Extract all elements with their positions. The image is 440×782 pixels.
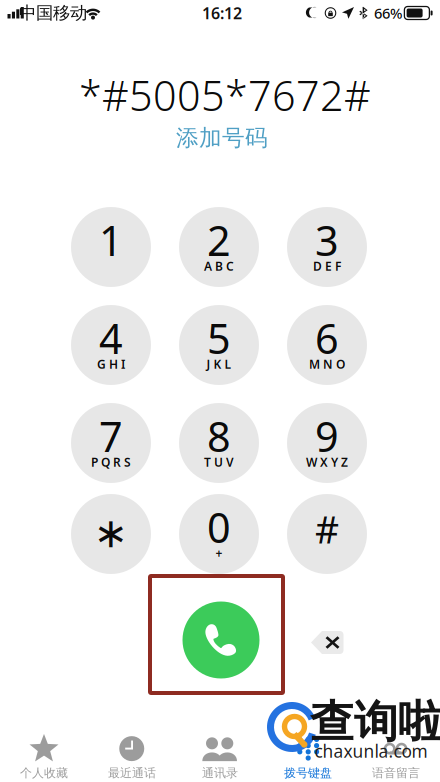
button[interactable]: 语音留言	[352, 732, 440, 782]
button[interactable]: 添加号码	[152, 125, 292, 151]
button[interactable]: ∗	[71, 494, 151, 574]
staticText: chaxunla.com	[314, 739, 427, 762]
button[interactable]: 0	[179, 494, 259, 574]
button[interactable]: 4	[71, 305, 151, 385]
button[interactable]: 通讯录	[176, 732, 264, 782]
button[interactable]: Call	[182, 601, 259, 678]
staticText: G H I	[97, 356, 125, 372]
staticText: 66%	[374, 3, 402, 23]
staticText: 3	[315, 213, 339, 267]
button[interactable]: 拨号键盘	[264, 732, 352, 782]
staticText: A B C	[204, 258, 234, 274]
button[interactable]: 1	[71, 207, 151, 287]
staticText: 添加号码	[176, 124, 268, 152]
button[interactable]: 5	[179, 305, 259, 385]
staticText: 1	[99, 213, 123, 267]
button[interactable]: 9	[287, 403, 367, 483]
staticText: 通讯录	[202, 766, 238, 780]
staticText: +	[215, 545, 222, 561]
staticText: 最近通话	[108, 766, 156, 780]
button[interactable]: #	[287, 494, 367, 574]
staticText: J K L	[206, 356, 231, 372]
staticText: 0	[207, 500, 231, 554]
button[interactable]: Delete	[304, 623, 350, 661]
staticText: 中国移动	[19, 2, 87, 24]
staticText: 2	[207, 213, 231, 267]
button[interactable]: 6	[287, 305, 367, 385]
staticText: 9	[315, 409, 339, 463]
staticText: 5	[207, 311, 231, 365]
staticText: ∗	[93, 509, 128, 556]
staticText: 6	[315, 311, 339, 365]
button[interactable]: 最近通话	[88, 732, 176, 782]
staticText: 8	[207, 409, 231, 463]
button[interactable]: 7	[71, 403, 151, 483]
staticText: 拨号键盘	[284, 766, 332, 780]
staticText: 语音留言	[372, 766, 420, 780]
button[interactable]: 2	[179, 207, 259, 287]
staticText: M N O	[309, 356, 345, 372]
staticText: D E F	[313, 258, 341, 274]
staticText: W X Y Z	[306, 454, 348, 470]
staticText: T U V	[204, 454, 234, 470]
staticText: 4	[99, 311, 123, 365]
staticText: 7	[99, 409, 123, 463]
staticText: 16:12	[202, 2, 242, 24]
staticText: 查询啦	[310, 695, 440, 749]
button[interactable]: 8	[179, 403, 259, 483]
button[interactable]: 个人收藏	[0, 732, 88, 782]
staticText: *#5005*7672#	[79, 68, 371, 122]
staticText: 个人收藏	[20, 766, 68, 780]
button[interactable]: 3	[287, 207, 367, 287]
staticText: #	[315, 504, 339, 554]
staticText: P Q R S	[91, 454, 131, 470]
